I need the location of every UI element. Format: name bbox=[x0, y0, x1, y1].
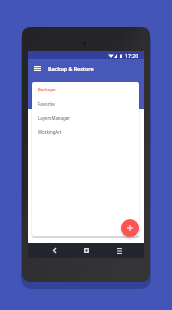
staticText: Backups: bbox=[38, 87, 57, 93]
staticText: Favorite bbox=[38, 101, 55, 107]
staticText: WorkingArt bbox=[38, 129, 62, 135]
staticText: Backup & Restore bbox=[48, 65, 94, 72]
button[interactable]: WorkingArt bbox=[32, 125, 139, 139]
staticText: 17:20 bbox=[125, 52, 139, 59]
button[interactable]: Add backup bbox=[121, 219, 139, 237]
button[interactable]: Open navigation drawer bbox=[31, 62, 44, 75]
button[interactable]: Back bbox=[44, 243, 64, 258]
staticText: LayersManager bbox=[38, 115, 71, 121]
button[interactable]: Recent apps bbox=[109, 243, 129, 258]
button[interactable]: Favorite bbox=[32, 97, 139, 111]
button[interactable]: LayersManager bbox=[32, 111, 139, 125]
button[interactable]: Home bbox=[76, 243, 96, 258]
